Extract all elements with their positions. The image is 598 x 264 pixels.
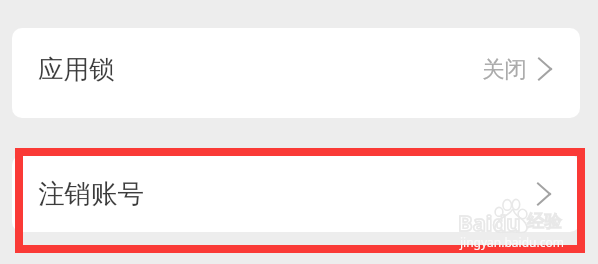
other: 进入应用锁设置 — [532, 56, 558, 82]
staticText: 应用锁 — [38, 53, 115, 85]
other: 注销账号 — [531, 181, 557, 207]
staticText: jingyan.baidu.com — [460, 234, 564, 250]
button[interactable]: 应用锁 — [12, 28, 580, 118]
staticText: 关闭 — [482, 55, 527, 83]
staticText: 经验 — [527, 210, 562, 232]
staticText: 注销账号 — [38, 177, 144, 210]
staticText: Baidu — [458, 207, 521, 237]
button[interactable]: 注销账号 — [12, 155, 580, 232]
